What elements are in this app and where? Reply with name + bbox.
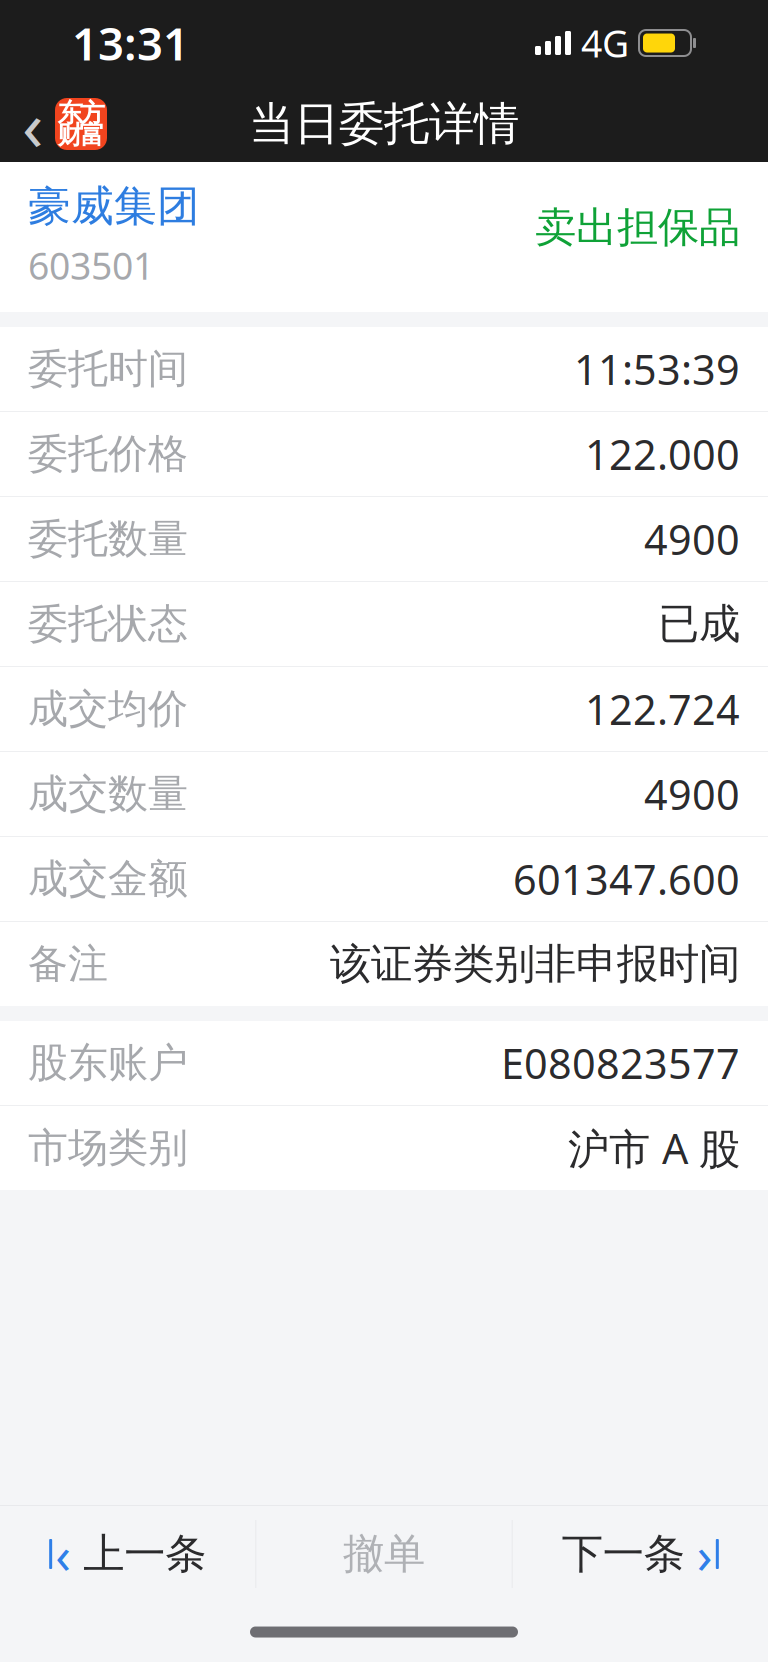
button[interactable]: ‹	[0, 1506, 255, 1602]
button[interactable]: 下一条	[513, 1506, 768, 1602]
staticText: 4G	[581, 18, 629, 68]
staticText: 603501	[28, 240, 154, 290]
staticText: 沪市 A 股	[568, 1120, 740, 1175]
button[interactable]: 返回	[0, 66, 107, 182]
staticText: 委托数量	[28, 514, 188, 563]
staticText: 601347.600	[513, 851, 740, 906]
staticText: 13:31	[72, 13, 189, 73]
staticText: 上一条	[83, 1529, 206, 1579]
staticText: 备注	[28, 939, 108, 988]
staticText: 豪威集团	[28, 180, 200, 232]
staticText: 4900	[644, 511, 740, 566]
staticText: 11:53:39	[574, 341, 740, 396]
staticText: 成交金额	[28, 854, 188, 903]
staticText: 卖出担保品	[535, 202, 740, 253]
staticText: 财	[57, 119, 82, 150]
staticText: E080823577	[501, 1035, 740, 1090]
button[interactable]: 豪威集团	[28, 180, 200, 232]
staticText: 富	[79, 119, 104, 150]
staticText: 撤单	[343, 1529, 425, 1579]
staticText: 市场类别	[28, 1123, 188, 1172]
staticText: 成交均价	[28, 684, 188, 733]
staticText: 委托价格	[28, 429, 188, 478]
staticText: 委托状态	[28, 599, 188, 648]
staticText: 方	[79, 97, 104, 128]
staticText: 4900	[644, 766, 740, 821]
staticText: 委托时间	[28, 344, 188, 393]
staticText: 122.724	[585, 681, 740, 736]
staticText: 该证券类别非申报时间	[330, 939, 740, 989]
staticText: 成交数量	[28, 769, 188, 818]
staticText: 当日委托详情	[249, 96, 519, 152]
staticText: 股东账户	[28, 1038, 188, 1087]
staticText: 122.000	[585, 426, 740, 481]
staticText: ‹	[22, 78, 43, 170]
button[interactable]: 撤单	[256, 1506, 512, 1602]
staticText: 下一条	[562, 1529, 685, 1579]
staticText: ‹	[55, 1520, 71, 1588]
staticText: 已成	[658, 599, 740, 649]
staticText: ›	[697, 1520, 713, 1588]
staticText: 东	[57, 97, 82, 128]
